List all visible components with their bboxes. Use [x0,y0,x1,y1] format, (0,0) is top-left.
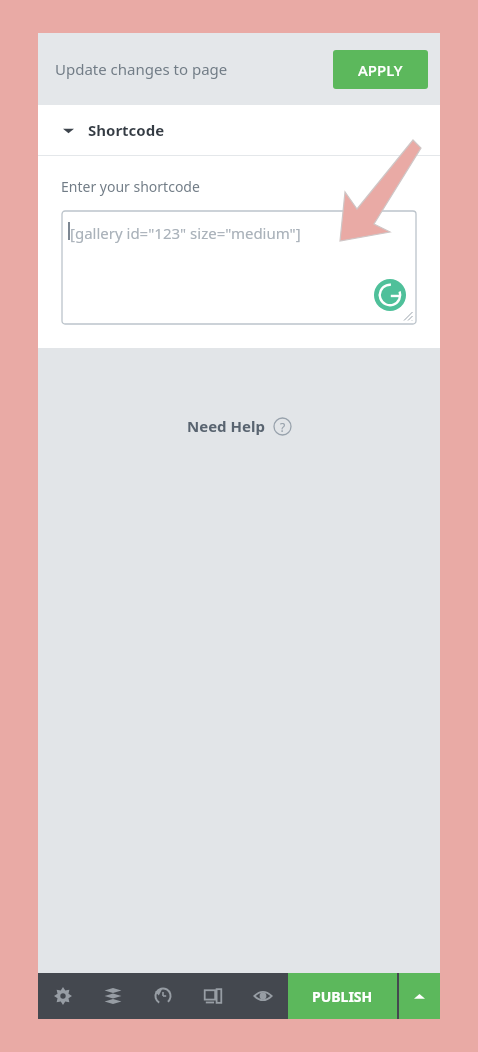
button[interactable]: Shortcode [38,105,440,155]
button[interactable]: More publish options [399,973,440,1019]
staticText: Shortcode [88,120,165,140]
button[interactable]: Settings [38,973,88,1019]
staticText: APPLY [358,60,403,80]
button[interactable]: Need Help [187,416,292,436]
staticText: PUBLISH [312,987,373,1006]
button[interactable]: History [138,973,188,1019]
button[interactable]: Preview [238,973,288,1019]
staticText: ? [280,419,286,435]
button[interactable]: Grammarly [374,279,406,311]
button[interactable]: Layers [88,973,138,1019]
staticText: Update changes to page [55,59,228,79]
staticText: [gallery id="123" size="medium"] [70,223,301,243]
button[interactable]: PUBLISH [288,973,397,1019]
staticText: Need Help [187,416,265,436]
button[interactable]: Responsive mode [188,973,238,1019]
button[interactable]: [gallery id="123" size="medium"] [62,211,416,324]
button[interactable]: APPLY [333,50,428,89]
staticText: Enter your shortcode [61,177,200,196]
